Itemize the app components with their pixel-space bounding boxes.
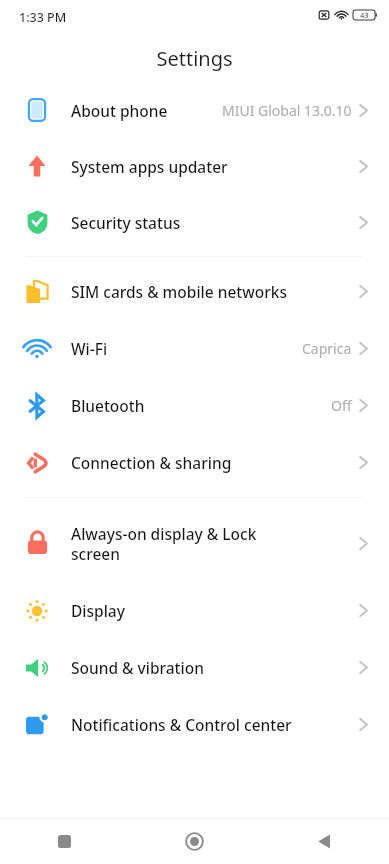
button[interactable]: System apps updater — [0, 138, 389, 194]
staticText: Wi-Fi — [71, 338, 108, 359]
button[interactable]: Notifications & Control center — [0, 696, 389, 753]
button[interactable]: Display — [0, 582, 389, 639]
staticText: Settings — [156, 45, 233, 72]
staticText: SIM cards & mobile networks — [71, 281, 287, 302]
button[interactable]: Security status — [0, 194, 389, 250]
staticText: Security status — [71, 212, 181, 233]
staticText: Sound & vibration — [71, 657, 204, 678]
staticText: MIUI Global 13.0.10 — [222, 101, 352, 120]
button[interactable]: Always-on display & Lock screen — [0, 504, 389, 582]
staticText: Connection & sharing — [71, 452, 232, 473]
button[interactable]: Wi-Fi — [0, 320, 389, 377]
staticText: Display — [71, 600, 125, 621]
staticText: System apps updater — [71, 156, 228, 177]
button[interactable]: About phone — [0, 82, 389, 138]
staticText: Always-on display & Lock screen — [71, 523, 286, 564]
button[interactable]: Sound & vibration — [0, 639, 389, 696]
staticText: About phone — [71, 100, 168, 121]
staticText: Notifications & Control center — [71, 714, 292, 735]
staticText: 43 — [360, 10, 369, 20]
button[interactable]: Recent apps — [0, 818, 129, 864]
button[interactable]: Bluetooth — [0, 377, 389, 434]
button[interactable]: SIM cards & mobile networks — [0, 263, 389, 320]
button[interactable]: Connection & sharing — [0, 434, 389, 491]
staticText: Off — [331, 396, 352, 415]
staticText: Caprica — [302, 339, 352, 358]
button[interactable]: Home — [129, 818, 259, 864]
staticText: Bluetooth — [71, 395, 145, 416]
staticText: 1:33 PM — [19, 9, 67, 26]
button[interactable]: Back — [259, 818, 389, 864]
